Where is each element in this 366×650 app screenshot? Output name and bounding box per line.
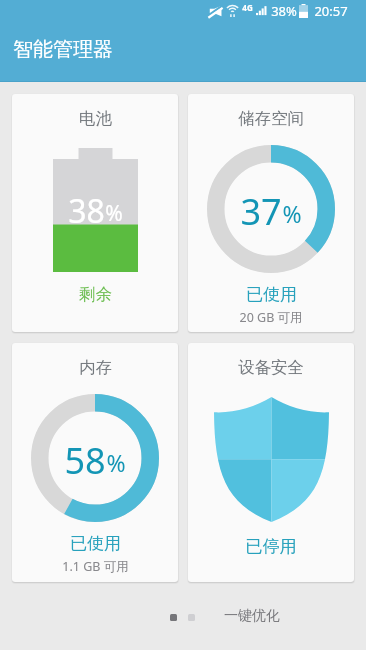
staticText: 4G bbox=[242, 2, 253, 13]
button[interactable]: Page 1 bbox=[170, 614, 177, 621]
staticText: 已使用 bbox=[246, 284, 297, 305]
staticText: 1.1 GB 可用 bbox=[62, 558, 129, 575]
staticText: % bbox=[106, 447, 126, 478]
button[interactable]: 内存 bbox=[12, 343, 178, 582]
button[interactable]: 电池 bbox=[12, 94, 178, 332]
staticText: 20:57 bbox=[314, 2, 348, 20]
staticText: 20 GB 可用 bbox=[239, 309, 303, 326]
staticText: 设备安全 bbox=[238, 357, 304, 378]
button[interactable]: 一键优化 bbox=[224, 607, 280, 625]
button[interactable]: 设备安全 bbox=[188, 343, 354, 582]
staticText: 37 bbox=[240, 187, 282, 236]
staticText: 已停用 bbox=[245, 535, 297, 557]
staticText: 内存 bbox=[79, 357, 112, 378]
staticText: 储存空间 bbox=[238, 108, 304, 129]
staticText: 剩余 bbox=[79, 284, 112, 305]
button[interactable]: Page 2 bbox=[188, 614, 195, 621]
staticText: 电池 bbox=[79, 108, 112, 129]
staticText: 38% bbox=[271, 2, 297, 20]
staticText: 58 bbox=[64, 436, 106, 485]
staticText: 已使用 bbox=[70, 533, 121, 554]
button[interactable]: 储存空间 bbox=[188, 94, 354, 332]
staticText: 38 bbox=[68, 189, 105, 233]
staticText: 智能管理器 bbox=[13, 37, 113, 62]
staticText: % bbox=[105, 199, 123, 228]
staticText: % bbox=[282, 198, 302, 229]
